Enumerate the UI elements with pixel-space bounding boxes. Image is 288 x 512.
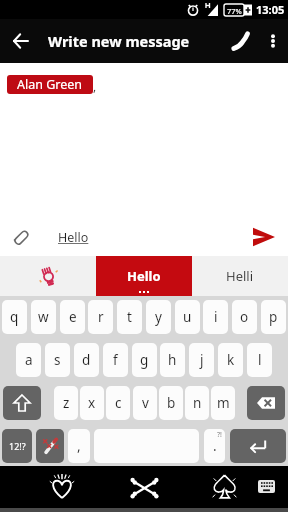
button[interactable] xyxy=(232,32,250,50)
staticText: b xyxy=(167,394,176,412)
button[interactable]: r xyxy=(88,300,113,334)
staticText: o xyxy=(240,308,249,326)
button[interactable]: ?! xyxy=(204,429,225,463)
staticText: v xyxy=(142,394,149,412)
staticText: p xyxy=(269,308,278,326)
staticText: s xyxy=(54,351,61,369)
button[interactable]: a xyxy=(16,343,41,377)
button[interactable]: x xyxy=(80,386,104,420)
button[interactable]: e xyxy=(60,300,85,334)
button[interactable]: k xyxy=(218,343,243,377)
staticText: Helli xyxy=(226,267,254,285)
button[interactable]: i xyxy=(203,300,228,334)
button[interactable] xyxy=(0,256,96,296)
staticText: Hello xyxy=(127,267,161,285)
staticText: ?! xyxy=(217,430,222,440)
staticText: m xyxy=(217,394,230,412)
button[interactable] xyxy=(49,474,75,500)
button[interactable]: v xyxy=(133,386,157,420)
button[interactable]: y xyxy=(146,300,171,334)
button[interactable]: n xyxy=(185,386,209,420)
staticText: j xyxy=(200,351,204,369)
staticText: c xyxy=(115,394,122,412)
staticText: d xyxy=(82,351,91,369)
button[interactable]: t xyxy=(117,300,142,334)
staticText: r xyxy=(98,308,104,326)
button[interactable]: c xyxy=(106,386,130,420)
staticText: q xyxy=(10,308,19,326)
staticText: 12!? xyxy=(9,440,26,452)
button[interactable]: Alan Green xyxy=(7,75,93,94)
button[interactable]: j xyxy=(189,343,214,377)
staticText: e xyxy=(69,308,77,326)
button[interactable] xyxy=(36,429,64,463)
staticText: k xyxy=(227,351,235,369)
button[interactable] xyxy=(211,473,238,500)
button[interactable]: p xyxy=(261,300,286,334)
staticText: . xyxy=(213,437,217,455)
staticText: a xyxy=(25,351,33,369)
button[interactable]: h xyxy=(160,343,185,377)
button[interactable]: o xyxy=(232,300,257,334)
staticText: x xyxy=(88,394,96,412)
staticText: 13:05 xyxy=(256,2,285,17)
button[interactable] xyxy=(230,429,286,463)
button[interactable] xyxy=(13,229,29,245)
staticText: i xyxy=(214,308,218,326)
staticText: h xyxy=(168,351,177,369)
staticText: u xyxy=(183,308,192,326)
button[interactable]: l xyxy=(247,343,272,377)
staticText: z xyxy=(63,394,70,412)
staticText: Hello xyxy=(58,229,89,246)
button[interactable] xyxy=(13,33,29,49)
staticText: 77% xyxy=(227,6,242,16)
button[interactable]: 12!? xyxy=(2,429,32,463)
staticText: , xyxy=(77,437,81,455)
staticText: l xyxy=(258,351,262,369)
staticText: Alan Green xyxy=(17,76,83,93)
button[interactable]: q xyxy=(2,300,27,334)
button[interactable]: b xyxy=(159,386,183,420)
button[interactable] xyxy=(253,226,275,248)
staticText: w xyxy=(38,308,49,326)
button[interactable]: Helli xyxy=(192,256,288,296)
button[interactable] xyxy=(131,475,158,500)
button[interactable]: z xyxy=(54,386,78,420)
staticText: g xyxy=(140,351,149,369)
button[interactable]: , xyxy=(68,429,90,463)
staticText: y xyxy=(155,308,162,326)
button[interactable] xyxy=(258,480,275,493)
button[interactable] xyxy=(247,386,285,420)
button[interactable]: m xyxy=(211,386,235,420)
button[interactable] xyxy=(266,34,280,48)
staticText: n xyxy=(193,394,202,412)
button[interactable]: Hello xyxy=(96,256,192,296)
button[interactable]: u xyxy=(175,300,200,334)
button[interactable]: g xyxy=(132,343,157,377)
staticText: t xyxy=(127,308,132,326)
staticText: , xyxy=(93,78,97,94)
staticText: f xyxy=(113,351,118,369)
button[interactable]: w xyxy=(31,300,56,334)
button[interactable] xyxy=(3,386,41,420)
button[interactable]: d xyxy=(74,343,99,377)
button[interactable]: f xyxy=(103,343,128,377)
staticText: Write new message xyxy=(48,31,190,51)
button[interactable]: s xyxy=(45,343,70,377)
